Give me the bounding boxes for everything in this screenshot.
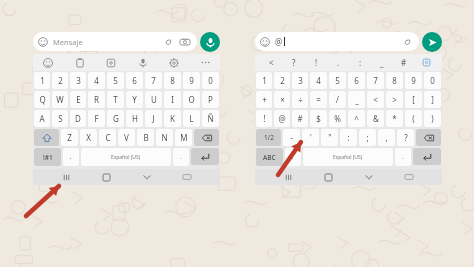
button[interactable]: %: [329, 110, 346, 127]
button[interactable]: N: [156, 129, 173, 146]
button[interactable]: T: [107, 91, 124, 108]
button[interactable]: Home: [99, 170, 113, 184]
button[interactable]: 2: [274, 72, 290, 89]
button[interactable]: Recents: [59, 170, 73, 184]
button[interactable]: Send: [422, 32, 442, 52]
button[interactable]: #: [393, 54, 415, 71]
button[interactable]: Attach: [163, 37, 173, 47]
button[interactable]: ;: [359, 129, 376, 146]
button[interactable]: K: [164, 110, 181, 127]
button[interactable]: Recents: [281, 170, 295, 184]
button[interactable]: Z: [61, 129, 78, 146]
button[interactable]: !#1: [34, 148, 61, 166]
button[interactable]: >: [386, 91, 403, 108]
button[interactable]: ,: [285, 148, 301, 166]
button[interactable]: Attach: [402, 37, 412, 47]
button[interactable]: Settings: [167, 56, 180, 69]
button[interactable]: 9: [405, 72, 422, 89]
button[interactable]: ": [321, 129, 338, 146]
button[interactable]: ^: [348, 110, 365, 127]
button[interactable]: ]: [424, 91, 441, 108]
button[interactable]: J: [145, 110, 162, 127]
button[interactable]: U: [145, 91, 162, 108]
button[interactable]: Sticker: [104, 56, 117, 69]
button[interactable]: L: [183, 110, 200, 127]
button[interactable]: ABC: [256, 148, 283, 166]
button[interactable]: Y: [126, 91, 143, 108]
button[interactable]: Hide keyboard: [362, 170, 376, 184]
button[interactable]: 1/2: [256, 129, 281, 146]
button[interactable]: ×: [274, 91, 290, 108]
button[interactable]: Enter: [413, 148, 441, 165]
button[interactable]: Emoji: [41, 56, 54, 69]
button[interactable]: C: [99, 129, 116, 146]
button[interactable]: Voice message: [200, 32, 220, 52]
button[interactable]: 0: [424, 72, 441, 89]
button[interactable]: W: [52, 91, 68, 108]
button[interactable]: !: [256, 110, 272, 127]
button[interactable]: @: [274, 110, 290, 127]
button[interactable]: ÷: [292, 91, 308, 108]
button[interactable]: _: [371, 54, 393, 71]
button[interactable]: -: [283, 129, 300, 146]
button[interactable]: 6: [348, 72, 365, 89]
button[interactable]: ?: [283, 54, 305, 71]
button[interactable]: More: [199, 56, 212, 69]
button[interactable]: Keyboard: [180, 170, 194, 184]
button[interactable]: G: [107, 110, 124, 127]
button[interactable]: 3: [292, 72, 308, 89]
button[interactable]: Camera: [180, 37, 190, 47]
button[interactable]: ': [302, 129, 319, 146]
button[interactable]: 1: [256, 72, 272, 89]
button[interactable]: +: [256, 91, 272, 108]
button[interactable]: 1: [34, 72, 50, 89]
button[interactable]: Español (US): [81, 148, 171, 166]
button[interactable]: $: [310, 110, 327, 127]
button[interactable]: .: [395, 148, 411, 166]
button[interactable]: &: [367, 110, 384, 127]
button[interactable]: H: [126, 110, 143, 127]
button[interactable]: =: [310, 91, 327, 108]
button[interactable]: 7: [367, 72, 384, 89]
button[interactable]: :: [349, 54, 371, 71]
button[interactable]: 5: [107, 72, 124, 89]
button[interactable]: 9: [183, 72, 200, 89]
button[interactable]: 4: [88, 72, 105, 89]
button[interactable]: 3: [70, 72, 86, 89]
button[interactable]: Ñ: [202, 110, 219, 127]
button[interactable]: !: [305, 54, 327, 71]
button[interactable]: B: [137, 129, 154, 146]
button[interactable]: <: [367, 91, 384, 108]
button[interactable]: Enter: [191, 148, 219, 165]
button[interactable]: R: [88, 91, 105, 108]
button[interactable]: 7: [145, 72, 162, 89]
button[interactable]: 8: [386, 72, 403, 89]
button[interactable]: .: [173, 148, 189, 166]
button[interactable]: 8: [164, 72, 181, 89]
button[interactable]: ?: [397, 129, 414, 146]
button[interactable]: E: [70, 91, 86, 108]
button[interactable]: Home: [321, 170, 335, 184]
button[interactable]: ): [424, 110, 441, 127]
button[interactable]: A: [34, 110, 50, 127]
button[interactable]: Keyboard: [402, 170, 416, 184]
button[interactable]: _: [348, 91, 365, 108]
button[interactable]: :: [340, 129, 357, 146]
button[interactable]: 0: [202, 72, 219, 89]
button[interactable]: Backspace: [416, 129, 441, 146]
button[interactable]: M: [175, 129, 192, 146]
button[interactable]: .: [327, 54, 349, 71]
button[interactable]: Clipboard: [73, 56, 86, 69]
button[interactable]: X: [80, 129, 97, 146]
button[interactable]: ,: [63, 148, 79, 166]
button[interactable]: Español (US): [303, 148, 393, 166]
button[interactable]: D: [70, 110, 86, 127]
button[interactable]: 5: [329, 72, 346, 89]
button[interactable]: S: [52, 110, 68, 127]
button[interactable]: Voice input: [136, 56, 149, 69]
button[interactable]: <: [260, 54, 283, 71]
button[interactable]: V: [118, 129, 135, 146]
button[interactable]: Shift: [34, 129, 59, 146]
button[interactable]: O: [183, 91, 200, 108]
button[interactable]: ,: [378, 129, 395, 146]
